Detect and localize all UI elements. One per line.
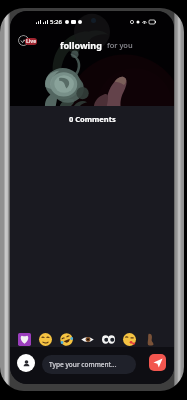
button[interactable]: Rolling on the floor laughing [60,333,73,346]
staticText: following [60,39,102,51]
button[interactable]: Purple heart [18,333,31,346]
button[interactable]: for you [107,40,133,50]
staticText: 0 Comments [69,114,116,124]
staticText: Type your comment... [49,360,117,369]
button[interactable]: Kissing face [123,333,136,346]
button[interactable]: Eyes [102,333,115,346]
button[interactable]: Send [149,354,166,371]
button[interactable]: Type your comment... [42,355,136,374]
button[interactable]: Foot [144,333,157,346]
button[interactable]: Your profile [17,354,35,372]
button[interactable]: following [60,39,102,51]
button[interactable]: Live profile [18,35,29,46]
staticText: 5:26 [50,18,62,26]
staticText: for you [107,40,133,50]
staticText: Live [26,38,37,45]
button[interactable]: Eye [81,333,94,346]
button[interactable]: Smiling face [39,333,52,346]
